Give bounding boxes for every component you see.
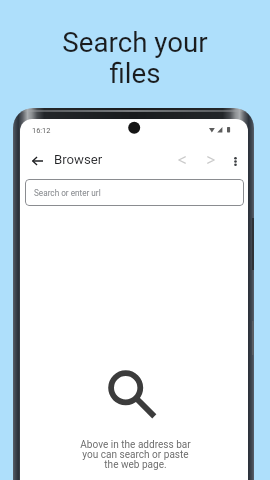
button[interactable]: Search or enter url [25,179,244,206]
staticText: Browser [54,152,103,167]
staticText: Search your files [62,26,208,90]
button[interactable]: More options [224,150,246,172]
button[interactable]: Navigate up [26,150,48,172]
button[interactable]: Back [171,149,193,171]
staticText: 16:12 [32,126,51,135]
button[interactable]: Forward [200,149,222,171]
staticText: Above in the address bar you can search … [80,439,191,470]
staticText: Search or enter url [34,188,101,198]
